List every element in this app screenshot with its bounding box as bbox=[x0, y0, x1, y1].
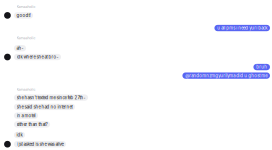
staticText: Karnaaholic bbox=[16, 87, 35, 92]
staticText: she said she had no internet bbox=[16, 104, 72, 109]
staticText: @randomnzmgyuriIyma did u ghost me bbox=[185, 73, 267, 78]
staticText: Karnaaholic bbox=[16, 36, 35, 40]
staticText: idk bbox=[16, 132, 22, 138]
staticText: bruh bbox=[256, 64, 267, 70]
staticText: in a motel bbox=[16, 113, 35, 118]
staticText: goodt! bbox=[16, 13, 30, 18]
staticText: ah- bbox=[16, 46, 23, 51]
staticText: i jst asked is she was alive bbox=[16, 142, 63, 147]
staticText: idk where she at bro- bbox=[16, 54, 58, 60]
staticText: Karnaaholic bbox=[16, 4, 35, 9]
staticText: u all pms i need yuri back bbox=[217, 25, 267, 31]
staticText: either than that? bbox=[16, 122, 47, 127]
staticText: she hasn't texted me since feb 27th- bbox=[16, 95, 85, 100]
